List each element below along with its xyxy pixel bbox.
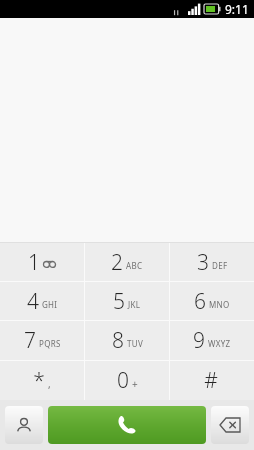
staticText: 5 bbox=[113, 287, 125, 316]
button[interactable]: # bbox=[170, 361, 254, 400]
button[interactable]: 7 bbox=[0, 321, 84, 360]
button[interactable]: 9 bbox=[170, 321, 254, 360]
staticText: * bbox=[33, 366, 45, 395]
staticText: GHI bbox=[42, 299, 58, 310]
button[interactable]: 1 bbox=[0, 243, 84, 281]
button[interactable]: 5 bbox=[85, 282, 169, 320]
staticText: # bbox=[204, 366, 218, 395]
staticText: 9 bbox=[193, 326, 205, 355]
staticText: 1 bbox=[28, 248, 40, 277]
staticText: DEF bbox=[212, 260, 228, 271]
staticText: + bbox=[132, 377, 138, 391]
staticText: 7 bbox=[24, 326, 36, 355]
button[interactable]: 3 bbox=[170, 243, 254, 281]
staticText: JKL bbox=[128, 299, 141, 310]
staticText: ABC bbox=[126, 260, 143, 271]
button[interactable]: 6 bbox=[170, 282, 254, 320]
staticText: 9:11 bbox=[225, 1, 249, 17]
staticText: PQRS bbox=[39, 338, 61, 349]
staticText: 0 bbox=[117, 366, 129, 395]
button[interactable]: Delete bbox=[211, 406, 249, 444]
button[interactable]: 8 bbox=[85, 321, 169, 360]
staticText: TUV bbox=[127, 338, 143, 349]
staticText: MNO bbox=[209, 299, 230, 310]
button[interactable]: Call bbox=[48, 406, 206, 444]
button[interactable]: 2 bbox=[85, 243, 169, 281]
button[interactable]: 4 bbox=[0, 282, 84, 320]
staticText: WXYZ bbox=[208, 338, 231, 349]
staticText: 4 bbox=[27, 287, 39, 316]
staticText: 6 bbox=[194, 287, 206, 316]
button[interactable]: * bbox=[0, 361, 84, 400]
staticText: 3 bbox=[197, 248, 209, 277]
staticText: , bbox=[48, 377, 51, 391]
staticText: 8 bbox=[112, 326, 124, 355]
button[interactable]: Contacts bbox=[5, 406, 43, 444]
staticText: 2 bbox=[111, 248, 123, 277]
button[interactable]: 0 bbox=[85, 361, 169, 400]
